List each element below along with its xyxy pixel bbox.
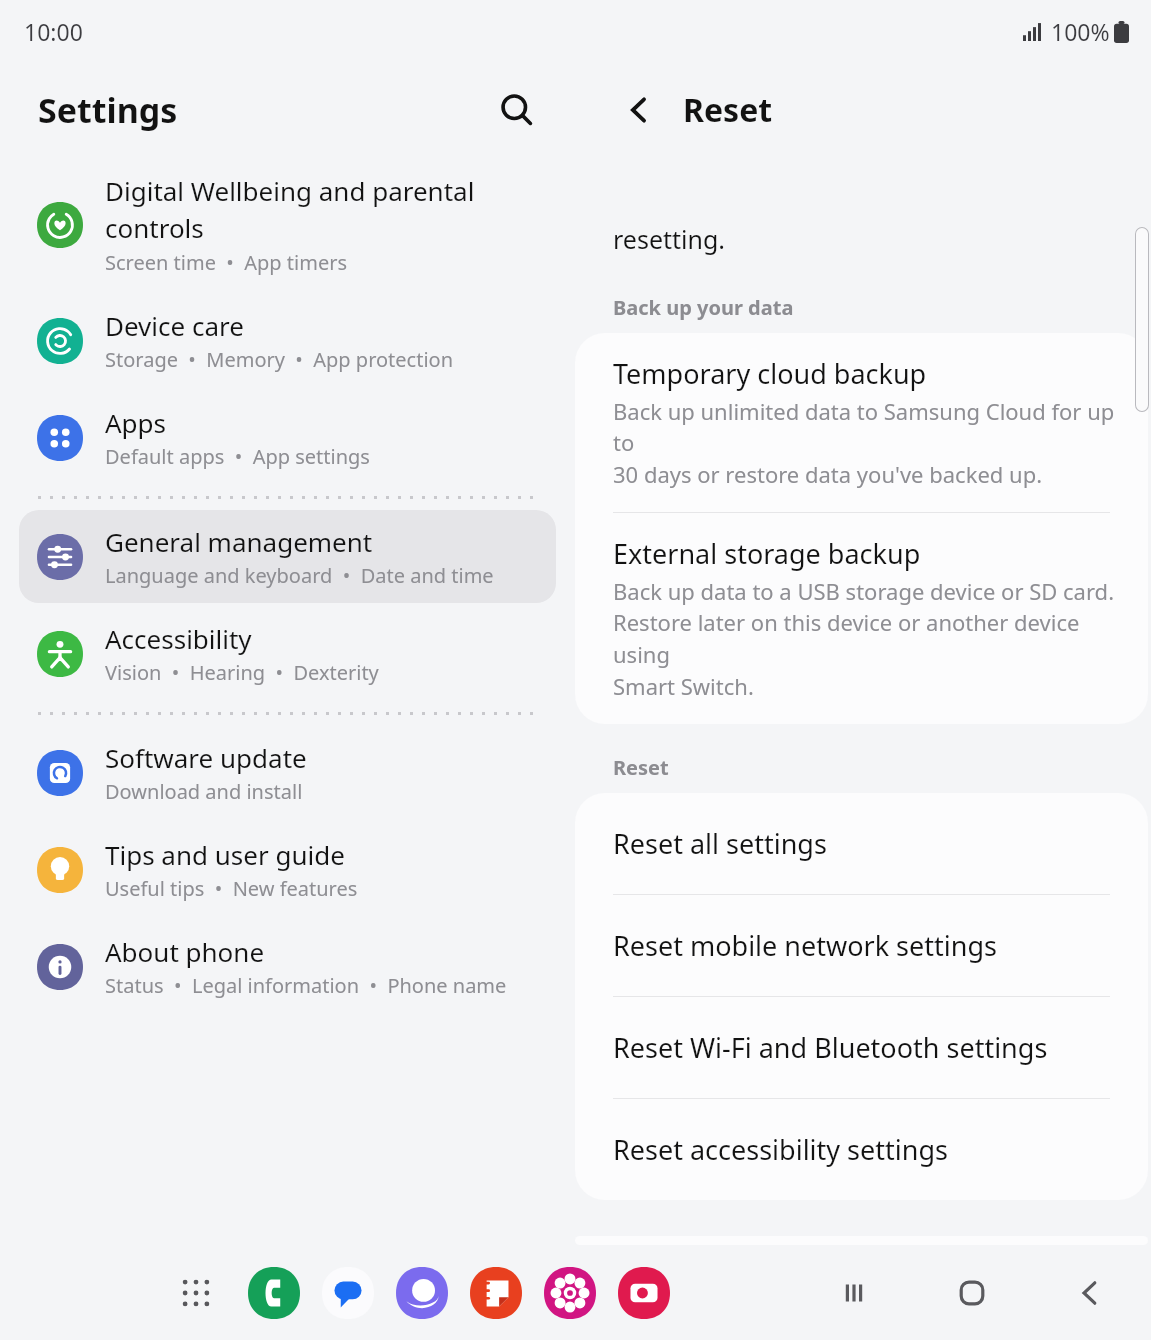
staticText: Software update (105, 740, 307, 775)
button[interactable]: Reset Wi-Fi and Bluetooth settings (575, 997, 1148, 1098)
staticText: Temporary cloud backup (613, 355, 927, 392)
staticText: Download and install (105, 778, 303, 805)
button[interactable]: Temporary cloud backup (575, 333, 1148, 512)
staticText: 10:00 (24, 16, 83, 47)
staticText: Reset accessibility settings (613, 1131, 948, 1168)
button[interactable]: Reset accessibility settings (575, 1099, 1148, 1200)
button[interactable]: Phone (248, 1267, 300, 1319)
staticText: Apps (105, 405, 167, 440)
staticText: Storage • Memory • App protection (105, 346, 454, 373)
staticText: Digital Wellbeing and parental controls (105, 173, 475, 246)
button[interactable]: Apps (170, 1267, 222, 1319)
button[interactable]: General management (19, 510, 556, 603)
button[interactable]: Camera (618, 1267, 670, 1319)
button[interactable]: Internet (396, 1267, 448, 1319)
staticText: Device care (105, 308, 244, 343)
staticText: General management (105, 524, 373, 559)
staticText: Language and keyboard • Date and time (105, 562, 494, 589)
button[interactable]: External storage backup (575, 513, 1148, 724)
button[interactable]: Tips and user guide (19, 823, 556, 916)
staticText: resetting. (613, 222, 726, 256)
button[interactable]: Apps (19, 391, 556, 484)
staticText: Reset Wi-Fi and Bluetooth settings (613, 1029, 1048, 1066)
staticText: External storage backup (613, 535, 921, 572)
staticText: Reset all settings (613, 825, 827, 862)
button[interactable]: Accessibility (19, 607, 556, 700)
button[interactable]: About phone (19, 920, 556, 1013)
staticText: Vision • Hearing • Dexterity (105, 659, 379, 686)
staticText: Screen time • App timers (105, 249, 348, 276)
staticText: Reset (683, 88, 773, 132)
staticText: About phone (105, 934, 265, 969)
button[interactable]: Search (489, 82, 545, 138)
staticText: Back up data to a USB storage device or … (613, 576, 1118, 702)
button[interactable]: Device care (19, 294, 556, 387)
button[interactable]: Reset mobile network settings (575, 895, 1148, 996)
button[interactable]: Reset all settings (575, 793, 1148, 894)
staticText: Default apps • App settings (105, 443, 370, 470)
button[interactable]: Digital Wellbeing and parental controls (19, 159, 556, 290)
staticText: Back up unlimited data to Samsung Cloud … (613, 396, 1118, 490)
button[interactable]: Back (613, 84, 665, 136)
button[interactable]: Messages (322, 1267, 374, 1319)
staticText: Reset (613, 754, 669, 781)
button[interactable]: Gallery (544, 1267, 596, 1319)
staticText: Accessibility (105, 621, 252, 656)
staticText: Status • Legal information • Phone name (105, 972, 507, 999)
staticText: Useful tips • New features (105, 875, 358, 902)
button[interactable]: Software update (19, 726, 556, 819)
button[interactable]: Notes (470, 1267, 522, 1319)
staticText: 100% (1051, 16, 1110, 47)
staticText: Settings (38, 87, 178, 133)
staticText: Reset mobile network settings (613, 927, 997, 964)
staticText: Back up your data (613, 294, 794, 321)
button[interactable]: Back (1057, 1260, 1123, 1326)
button[interactable]: Home (939, 1260, 1005, 1326)
button[interactable]: Recents (821, 1260, 887, 1326)
staticText: Tips and user guide (105, 837, 345, 872)
